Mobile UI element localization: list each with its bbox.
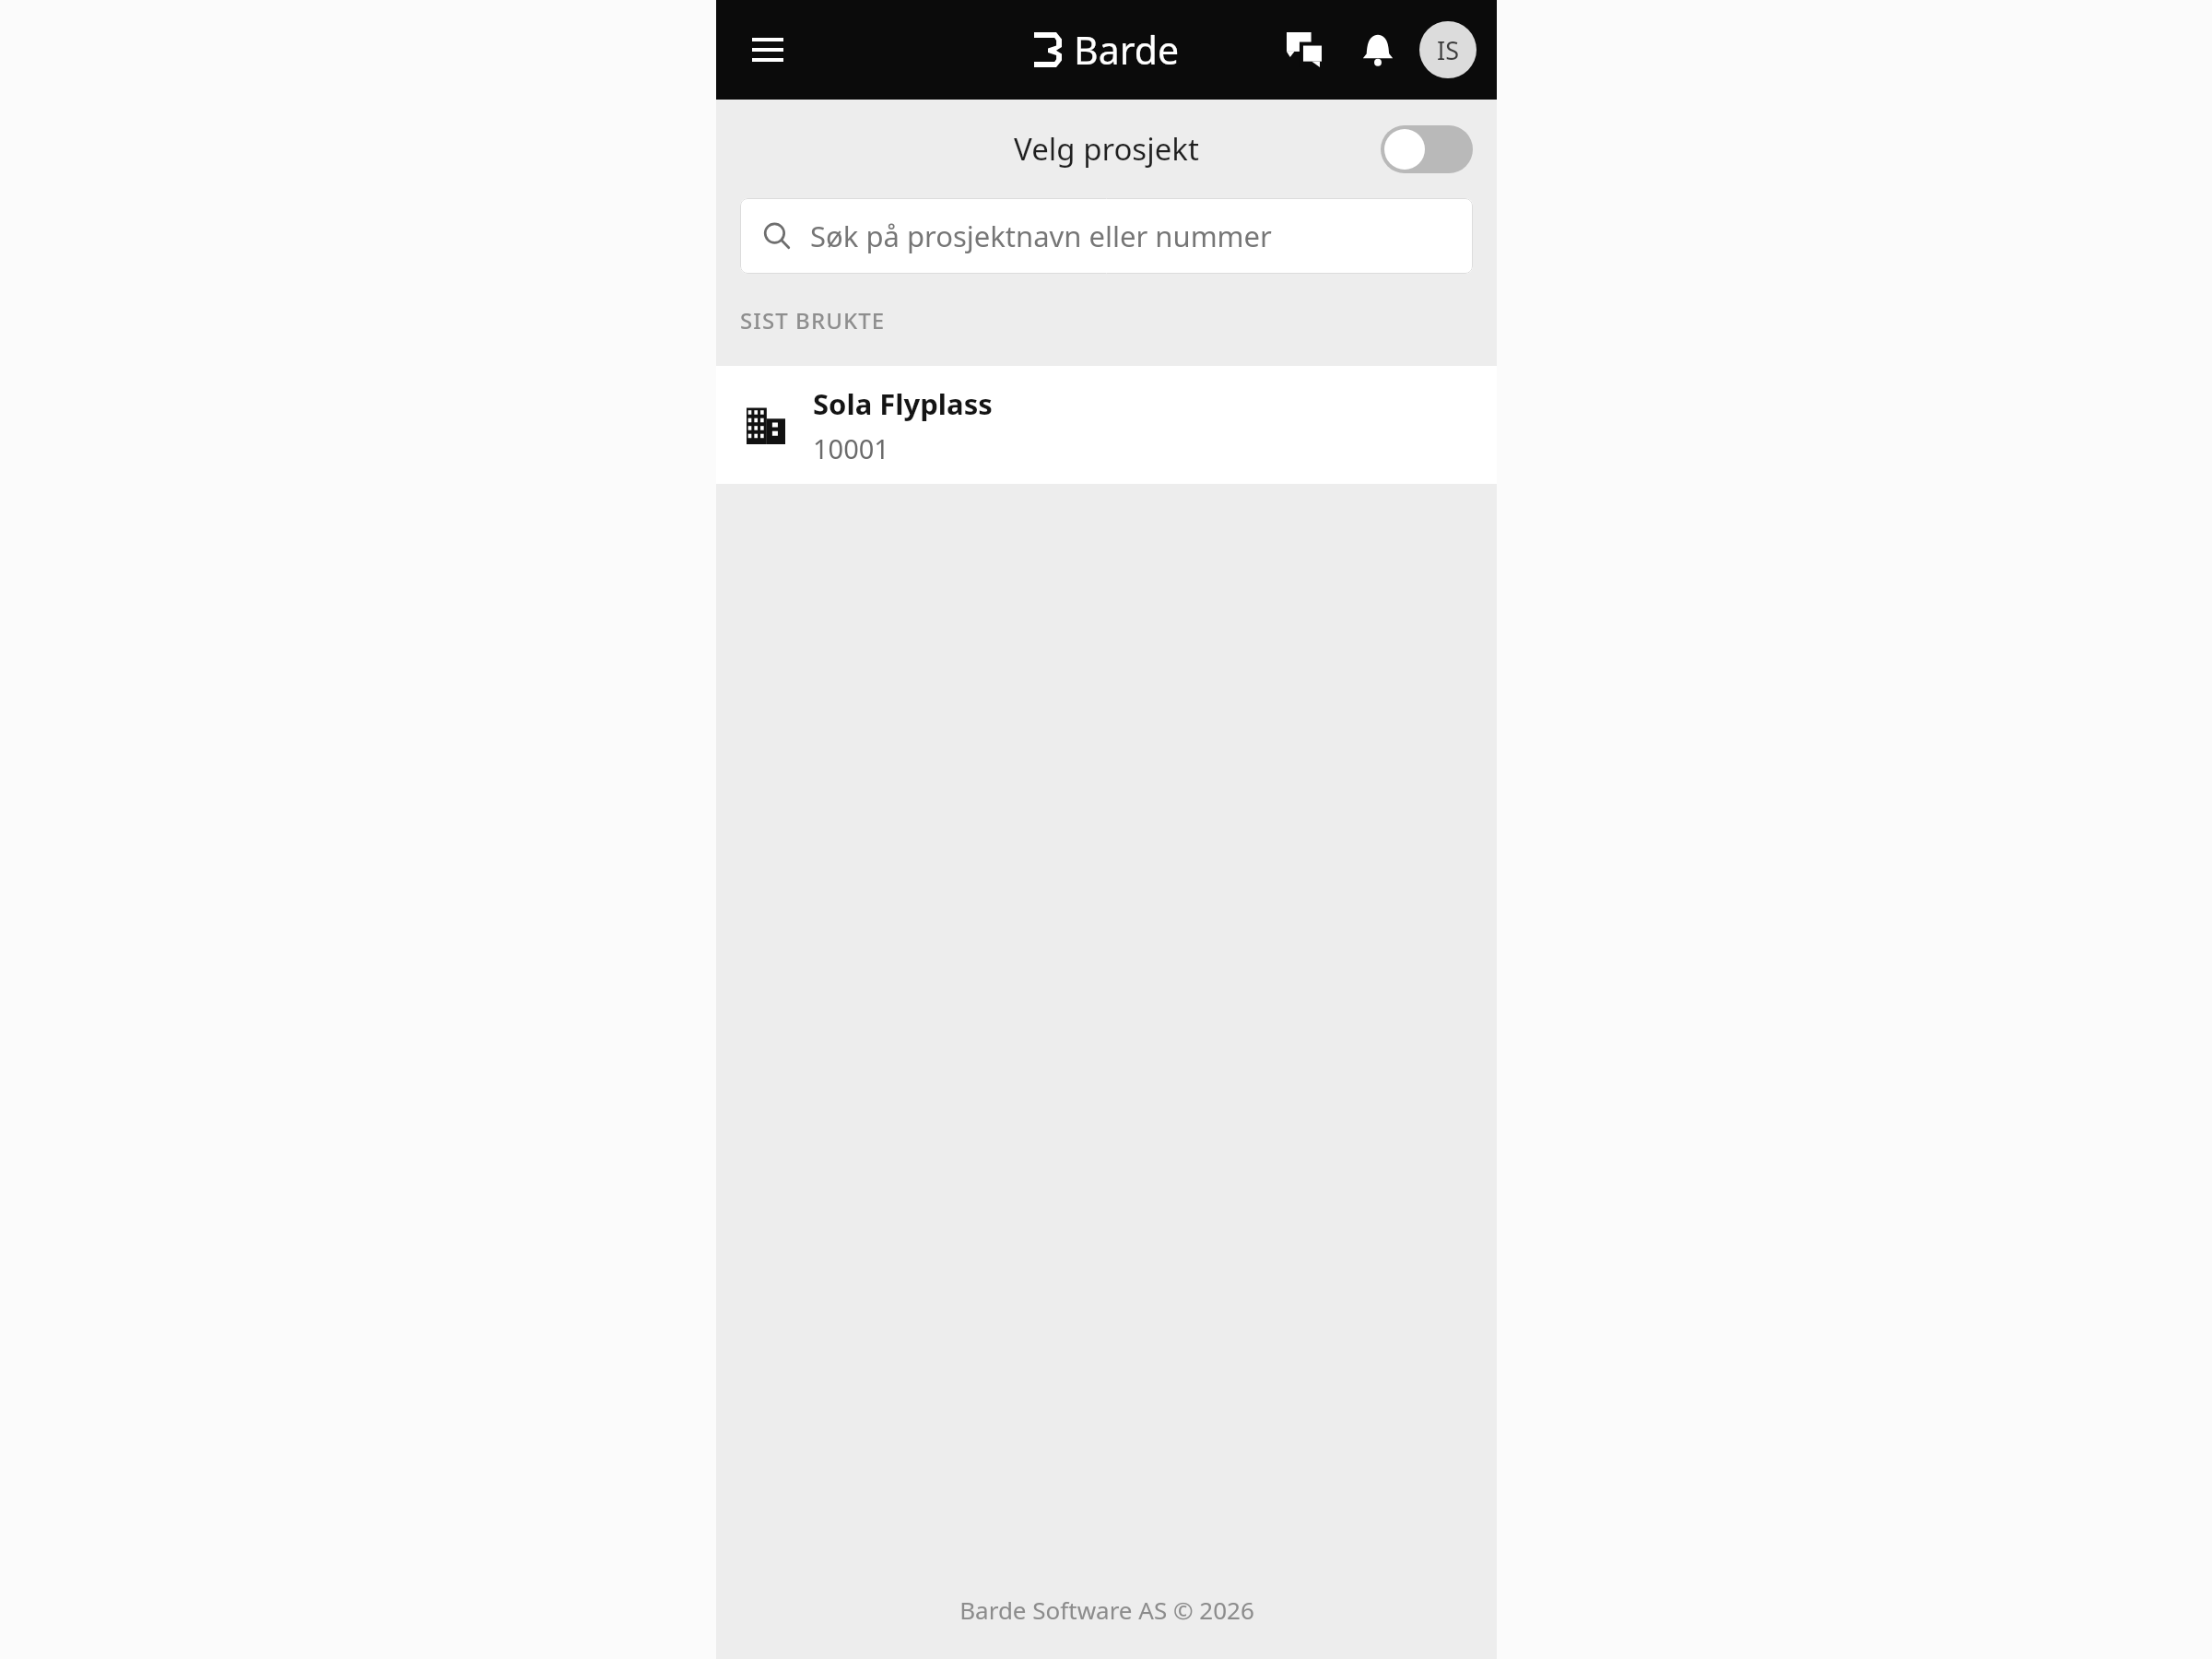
button[interactable]: Toggle project selection (1381, 125, 1473, 173)
button[interactable]: Menu (740, 22, 795, 77)
staticText: Velg prosjekt (1014, 128, 1199, 170)
staticText: Søk på prosjektnavn eller nummer (810, 217, 1272, 255)
staticText: Barde (1074, 24, 1180, 76)
staticText: Barde Software AS © 2026 (959, 1594, 1254, 1626)
button[interactable]: Sola Flyplass (716, 366, 1497, 484)
button[interactable]: IS (1419, 21, 1477, 78)
button[interactable]: Søk på prosjektnavn eller nummer (740, 198, 1473, 274)
button[interactable]: Messages (1274, 19, 1335, 80)
staticText: IS (1437, 33, 1459, 67)
staticText: Sola Flyplass (813, 384, 993, 423)
button[interactable]: Notifications (1347, 19, 1408, 80)
staticText: 10001 (813, 430, 889, 466)
staticText: SIST BRUKTE (740, 305, 886, 335)
